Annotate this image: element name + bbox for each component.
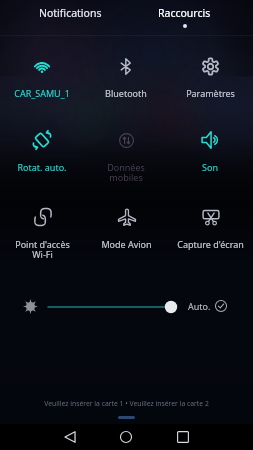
button[interactable]: Back — [55, 424, 85, 450]
button[interactable]: Raccourcis — [139, 6, 229, 32]
staticText: Veuillez insérer la carte 1 • Veuillez i… — [0, 399, 253, 408]
staticText: Bluetooth — [105, 87, 147, 99]
staticText: Raccourcis — [158, 6, 211, 20]
button[interactable]: Mode Avion — [84, 204, 168, 268]
button[interactable]: Recents — [168, 424, 198, 450]
staticText: Auto. — [188, 300, 211, 312]
button[interactable]: Auto brightness — [214, 299, 228, 313]
button[interactable]: Home — [111, 424, 141, 450]
staticText: Point d'accès Wi-Fi — [15, 238, 70, 261]
button[interactable]: Capture d'écran — [168, 204, 252, 268]
button[interactable]: CAR_SAMU_1 — [0, 53, 84, 117]
staticText: Paramètres — [186, 87, 235, 99]
staticText: Capture d'écran — [177, 238, 244, 250]
button[interactable]: Brightness — [19, 295, 41, 317]
staticText: Rotat. auto. — [17, 161, 67, 173]
staticText: Notifications — [39, 6, 102, 20]
button[interactable]: Données mobiles — [84, 127, 168, 191]
staticText: CAR_SAMU_1 — [14, 87, 70, 99]
button[interactable]: Paramètres — [168, 53, 252, 117]
staticText: Mode Avion — [101, 238, 152, 250]
button[interactable]: Rotat. auto. — [0, 127, 84, 191]
staticText: Données mobiles — [107, 161, 145, 184]
staticText: Son — [202, 161, 218, 173]
button[interactable]: Brightness slider — [48, 299, 180, 315]
button[interactable]: Bluetooth — [84, 53, 168, 117]
button[interactable]: Notifications — [25, 6, 115, 32]
button[interactable]: Point d'accès Wi-Fi — [0, 204, 84, 268]
button[interactable]: Son — [168, 127, 252, 191]
